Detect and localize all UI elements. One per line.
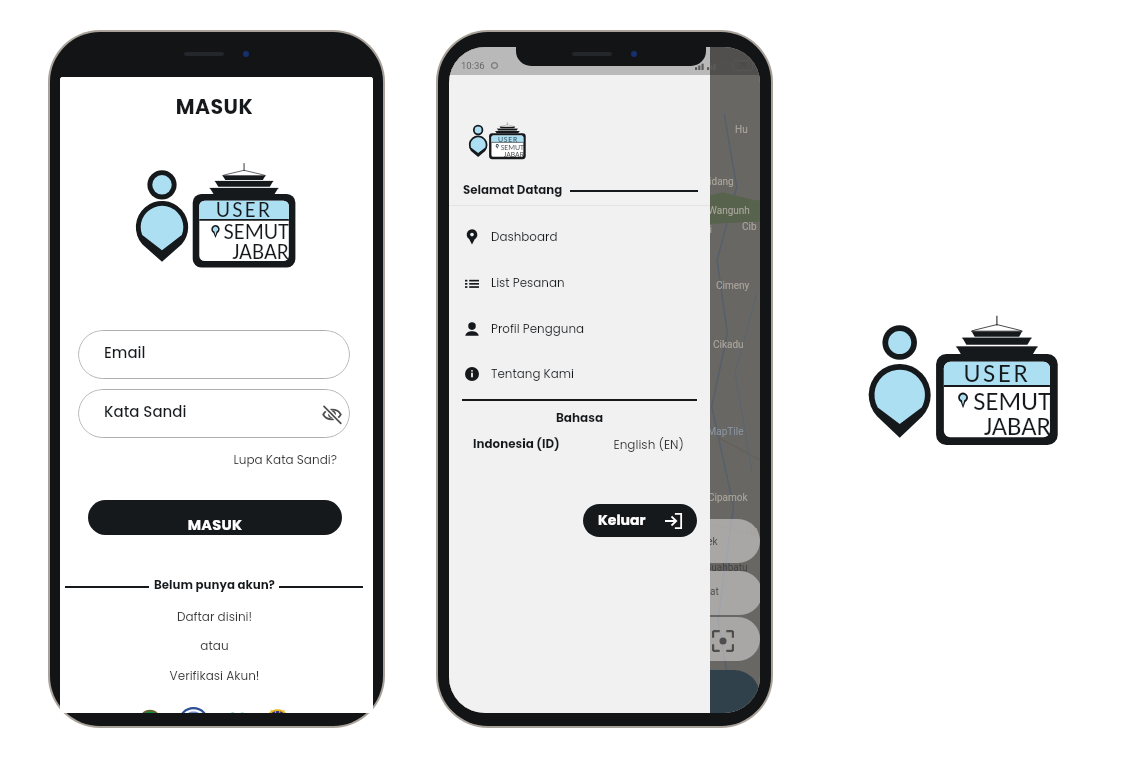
staticText: 79 [739,62,747,70]
staticText: ri [706,224,712,236]
staticText: MASUK [88,515,342,535]
button[interactable]: English (EN) [610,436,684,453]
button[interactable]: List Pesanan [449,266,710,300]
staticText: Wangunh [708,205,750,217]
button[interactable] [680,571,760,615]
staticText: Tentang Kami [491,366,574,383]
staticText: SEMUT [490,142,524,152]
staticText: JABAR [194,238,289,265]
staticText: 10:36 [461,60,485,71]
staticText: Bahasa [449,409,710,426]
staticText: Cikadu [713,339,744,351]
staticText: SEMUT [938,385,1051,417]
staticText: USER [938,357,1056,389]
staticText: Hu [735,124,748,136]
staticText: USER [194,196,294,223]
button[interactable]: Lupa Kata Sandi? [60,451,337,468]
staticText: USER [490,134,526,144]
staticText: MASUK [60,92,369,121]
staticText: Dashboard [491,229,558,246]
staticText: Buahbatu [705,562,748,574]
button[interactable] [678,519,760,563]
staticText: rek [704,536,718,548]
button[interactable]: Show password [322,406,342,423]
button[interactable]: Keluar [583,504,697,537]
staticText: Cib [742,221,757,233]
button[interactable]: Indonesia (ID) [473,436,560,453]
staticText: atau [60,637,369,654]
staticText: Email [104,342,146,363]
staticText: Kata Sandi [104,401,187,422]
button[interactable]: Daftar disini! [60,608,369,625]
staticText: nMapTile [702,426,744,438]
button[interactable]: Email [78,330,350,379]
staticText: kat [705,586,719,598]
staticText: kidang [704,176,734,188]
staticText: Cimeny [716,280,750,292]
button[interactable]: Verifikasi Akun! [60,667,369,684]
staticText: Keluar [598,510,646,530]
staticText: Profil Pengguna [491,321,585,338]
button[interactable]: MASUK [88,500,342,535]
button[interactable] [678,617,760,661]
button[interactable]: Profil Pengguna [449,312,710,346]
staticText: SEMUT [194,218,289,245]
button[interactable]: Kata Sandi [78,389,350,438]
button[interactable]: Recenter map [712,630,734,652]
staticText: List Pesanan [491,275,565,292]
staticText: Belum punya akun? [149,577,280,594]
staticText: JABAR [490,149,524,159]
staticText: Da [746,525,759,537]
button[interactable]: Dashboard [449,220,710,254]
staticText: Selamat Datang [463,182,563,199]
staticText: Cipamok [708,492,748,504]
button[interactable]: Tentang Kami [449,357,710,391]
staticText: JABAR [938,410,1051,442]
